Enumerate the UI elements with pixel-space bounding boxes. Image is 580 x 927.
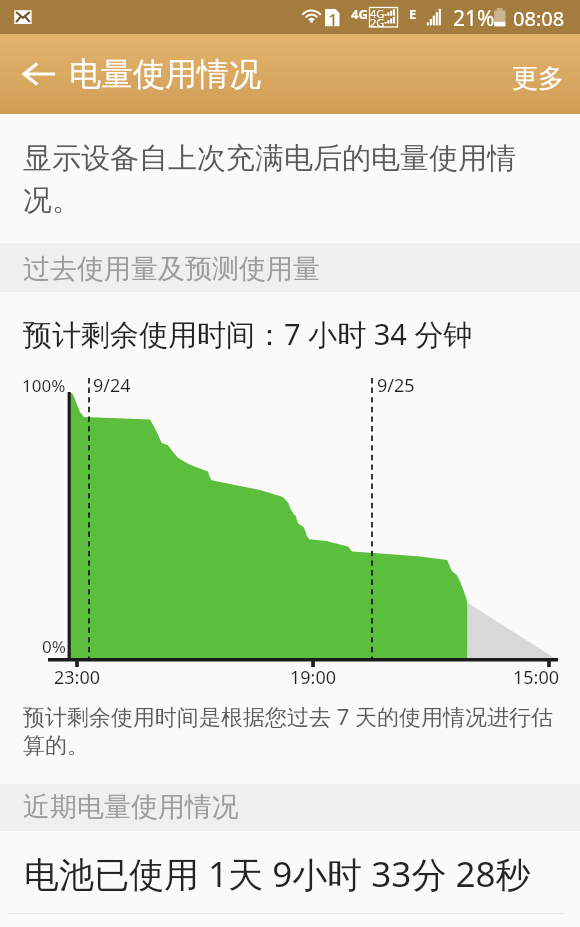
- staticText: 19:00: [290, 665, 337, 690]
- staticText: 更多: [512, 62, 564, 95]
- staticText: 显示设备自上次充满电后的电量使用情况。: [23, 137, 535, 221]
- staticText: 电量使用情况: [69, 54, 261, 94]
- staticText: 预计剩余使用时间是根据您过去 7 天的使用情况进行估算的。: [23, 703, 561, 760]
- button[interactable]: 更多: [500, 48, 576, 109]
- staticText: 4G: [370, 6, 385, 21]
- staticText: 9/24: [93, 373, 131, 398]
- button[interactable]: Back: [10, 46, 66, 102]
- staticText: E: [409, 5, 417, 23]
- staticText: 过去使用量及预测使用量: [23, 252, 320, 286]
- staticText: 近期电量使用情况: [23, 790, 239, 824]
- staticText: 电池已使用 1天 9小时 33分 28秒: [24, 850, 531, 898]
- staticText: 4G: [351, 5, 368, 23]
- staticText: 100%: [22, 374, 66, 397]
- staticText: 23:00: [54, 665, 101, 690]
- staticText: 预计剩余使用时间：7 小时 34 分钟: [23, 314, 473, 354]
- staticText: 08:08: [513, 5, 565, 32]
- staticText: 0%: [42, 635, 66, 658]
- staticText: 9/25: [377, 373, 415, 398]
- staticText: 1: [328, 8, 338, 31]
- staticText: 15:00: [513, 665, 560, 690]
- staticText: 2G: [370, 15, 385, 30]
- staticText: 21%: [453, 4, 495, 33]
